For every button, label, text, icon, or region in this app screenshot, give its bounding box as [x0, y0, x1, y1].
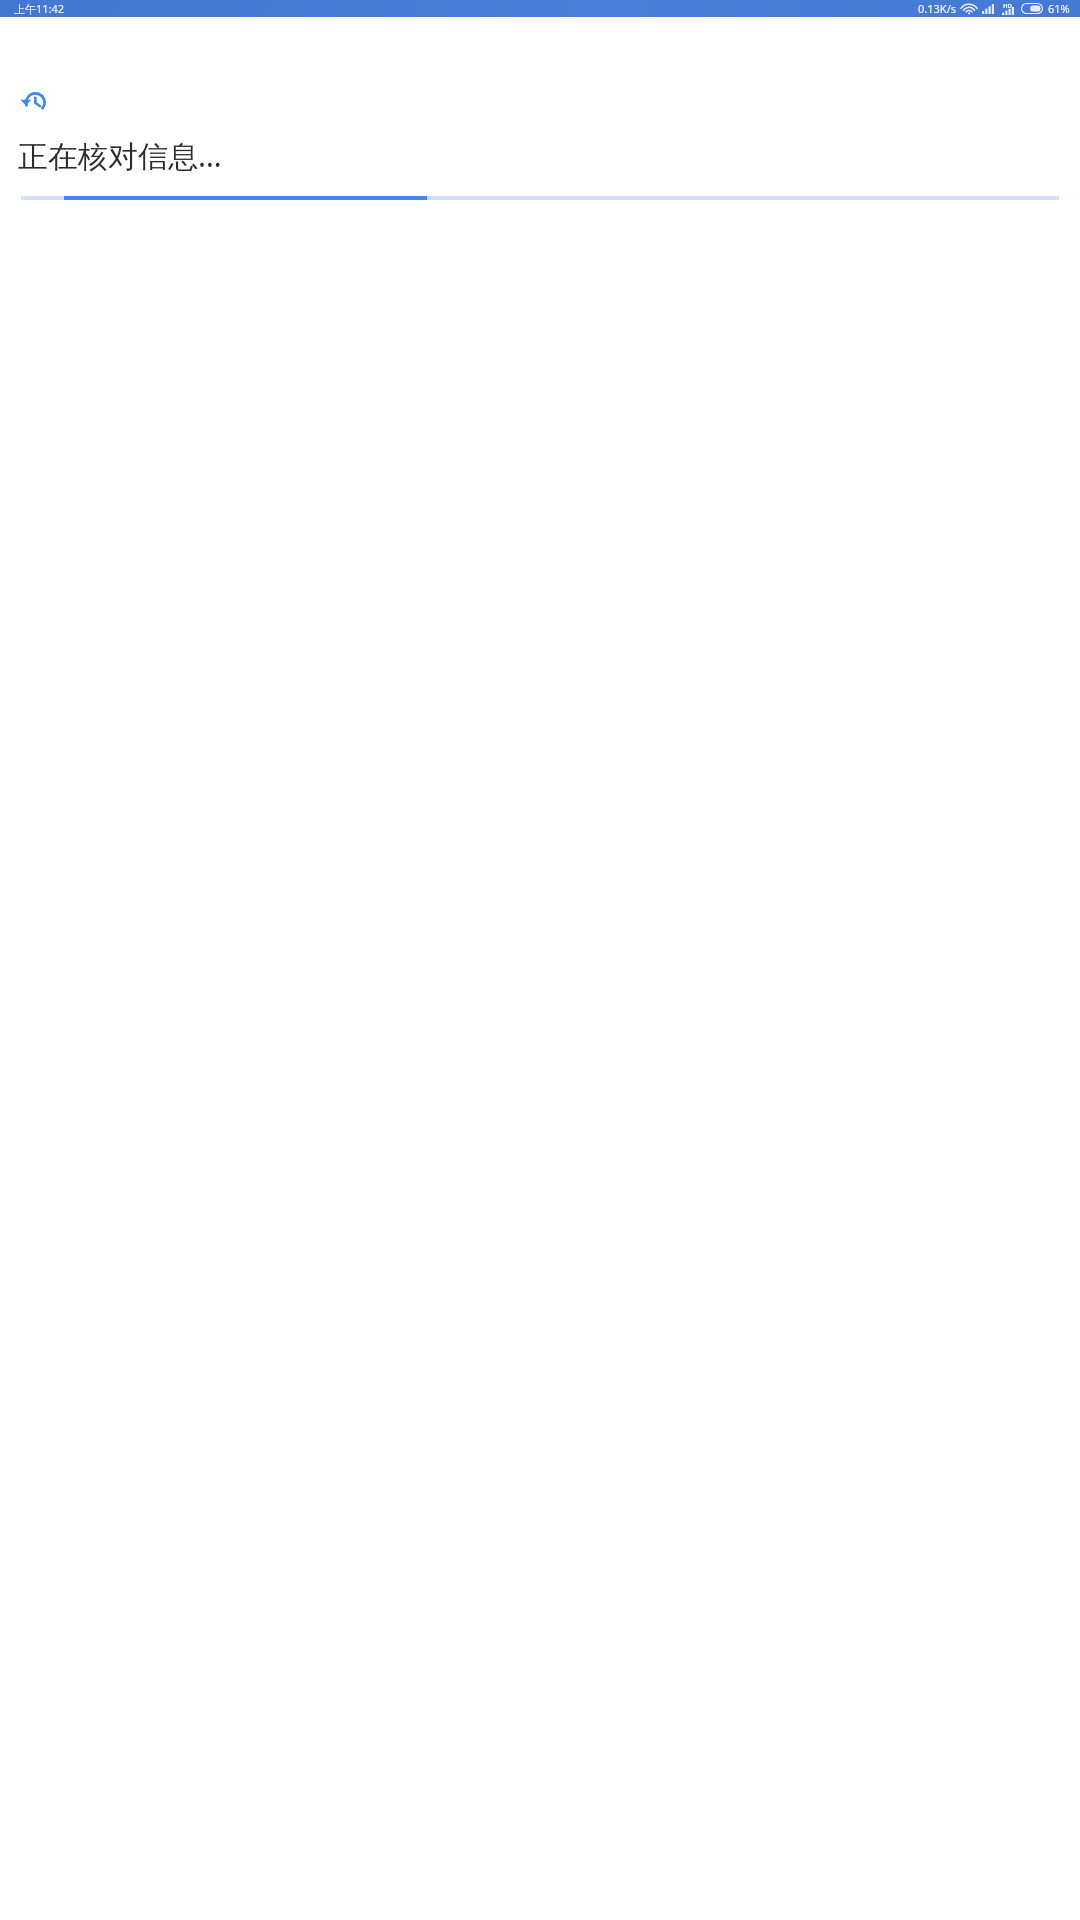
staticText: 正在核对信息…: [18, 135, 222, 176]
staticText: 上午11:42: [14, 1, 65, 16]
button[interactable]: History: [21, 89, 47, 115]
staticText: 0.13K/s: [918, 1, 956, 16]
staticText: 61%: [1048, 1, 1070, 16]
staticText: HD: [1003, 2, 1012, 10]
